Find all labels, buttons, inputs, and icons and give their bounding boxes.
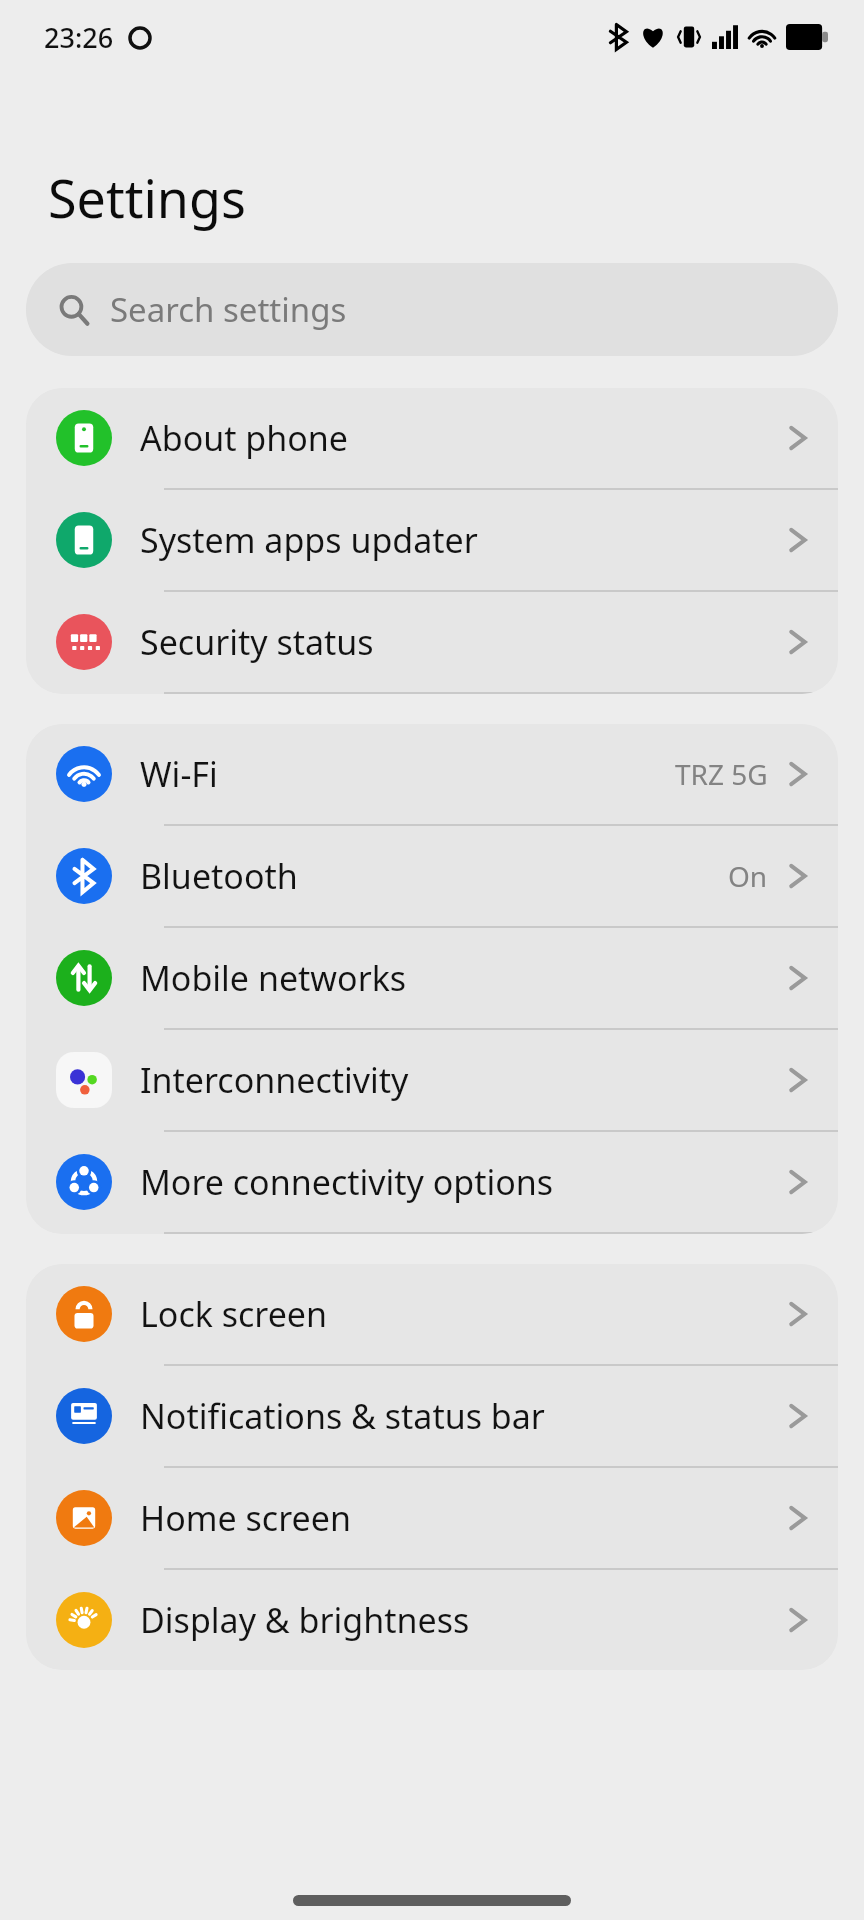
staticText: Interconnectivity: [140, 1057, 409, 1103]
button[interactable]: Lock screen: [26, 1264, 838, 1364]
staticText: Search settings: [110, 287, 347, 332]
staticText: Display & brightness: [140, 1597, 470, 1643]
button[interactable]: Interconnectivity: [26, 1030, 838, 1130]
button[interactable]: Mobile networks: [26, 928, 838, 1028]
button[interactable]: More connectivity options: [26, 1132, 838, 1232]
staticText: Notifications & status bar: [140, 1393, 545, 1439]
button[interactable]: Display & brightness: [26, 1570, 838, 1670]
staticText: Home screen: [140, 1495, 351, 1541]
staticText: More connectivity options: [140, 1159, 554, 1205]
staticText: System apps updater: [140, 517, 478, 563]
staticText: Lock screen: [140, 1291, 328, 1337]
button[interactable]: Bluetooth: [26, 826, 838, 926]
button[interactable]: Security status: [26, 592, 838, 692]
staticText: On: [728, 857, 768, 895]
staticText: Bluetooth: [140, 853, 298, 899]
staticText: Wi-Fi: [140, 751, 218, 797]
button[interactable]: Search settings: [26, 263, 838, 356]
button[interactable]: About phone: [26, 388, 838, 488]
staticText: TRZ 5G: [675, 755, 768, 793]
button[interactable]: System apps updater: [26, 490, 838, 590]
staticText: 23:26: [44, 19, 114, 56]
staticText: Mobile networks: [140, 955, 407, 1001]
staticText: About phone: [140, 415, 349, 461]
staticText: Settings: [48, 162, 246, 233]
button[interactable]: Home screen: [26, 1468, 838, 1568]
button[interactable]: Wi-Fi: [26, 724, 838, 824]
staticText: Security status: [140, 619, 374, 665]
button[interactable]: Notifications & status bar: [26, 1366, 838, 1466]
